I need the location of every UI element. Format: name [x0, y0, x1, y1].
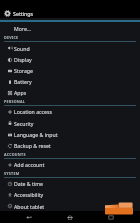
staticText: Add account: [14, 161, 45, 168]
button[interactable]: Apps: [0, 87, 140, 98]
button[interactable]: About tablet: [0, 200, 140, 212]
staticText: Sound: [14, 45, 30, 52]
staticText: Battery: [14, 78, 32, 85]
staticText: Security: [14, 120, 34, 127]
staticText: About tablet: [14, 203, 45, 210]
staticText: Backup & reset: [14, 142, 51, 149]
staticText: Language & input: [14, 131, 58, 138]
staticText: Storage: [14, 67, 33, 74]
button[interactable]: Date & time: [0, 178, 140, 189]
button[interactable]: Backup & reset: [0, 140, 140, 151]
button[interactable]: Location access: [0, 106, 140, 117]
button[interactable]: Recents: [99, 211, 123, 223]
staticText: Display: [14, 56, 32, 63]
staticText: SYSTEM: [4, 171, 20, 176]
staticText: Location access: [14, 108, 52, 115]
button[interactable]: Storage: [0, 65, 140, 76]
staticText: Data usage: [14, 14, 42, 17]
staticText: ACCOUNTS: [4, 152, 26, 157]
button[interactable]: Display: [0, 54, 140, 65]
staticText: DEVICE: [4, 35, 19, 40]
button[interactable]: Home: [58, 211, 82, 223]
staticText: Settings: [13, 10, 34, 17]
button[interactable]: Accessibility: [0, 189, 140, 200]
button[interactable]: Settings: [0, 6, 140, 20]
button[interactable]: Battery: [0, 76, 140, 87]
button[interactable]: More...: [0, 23, 140, 34]
button[interactable]: Sound: [0, 42, 140, 54]
button[interactable]: Back: [17, 211, 41, 223]
staticText: Apps: [14, 89, 27, 96]
button[interactable]: Security: [0, 117, 140, 129]
staticText: More...: [14, 25, 31, 32]
button[interactable]: Language & input: [0, 129, 140, 140]
button[interactable]: Add account: [0, 159, 140, 170]
staticText: Accessibility: [14, 191, 44, 198]
staticText: PERSONAL: [4, 99, 26, 104]
staticText: Date & time: [14, 180, 43, 187]
